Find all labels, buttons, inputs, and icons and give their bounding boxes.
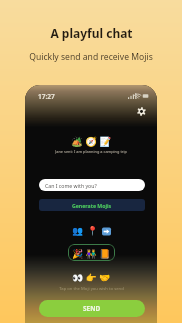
staticText: SEND	[83, 304, 101, 313]
button[interactable]: 🎉 👫 📙	[68, 244, 115, 261]
button[interactable]: Generate Mojis	[39, 199, 145, 211]
staticText: 📍	[87, 226, 99, 237]
staticText: Can I come with you?	[45, 182, 97, 189]
button[interactable]: Settings	[136, 106, 147, 117]
staticText: 17:27	[38, 92, 55, 101]
staticText: Tap on the Moji you wish to send	[59, 286, 124, 292]
button[interactable]: 👀 👉 🤝	[67, 269, 116, 285]
button[interactable]: Can I come with you?	[39, 179, 145, 191]
button[interactable]: SEND	[39, 300, 145, 317]
staticText: 🏕️ 🧭 📝	[71, 135, 112, 148]
staticText: A playful chat	[50, 25, 133, 41]
staticText: 🎉 👫 📙	[72, 247, 111, 259]
button[interactable]: 👥	[67, 224, 116, 239]
staticText: 👥	[72, 226, 84, 237]
staticText: Jane sent: I am planning a camping trip	[55, 149, 127, 154]
staticText: Quickly send and receive Mojis	[29, 51, 153, 63]
staticText: Generate Mojis	[72, 202, 112, 209]
staticText: 👀 👉 🤝	[72, 271, 111, 283]
